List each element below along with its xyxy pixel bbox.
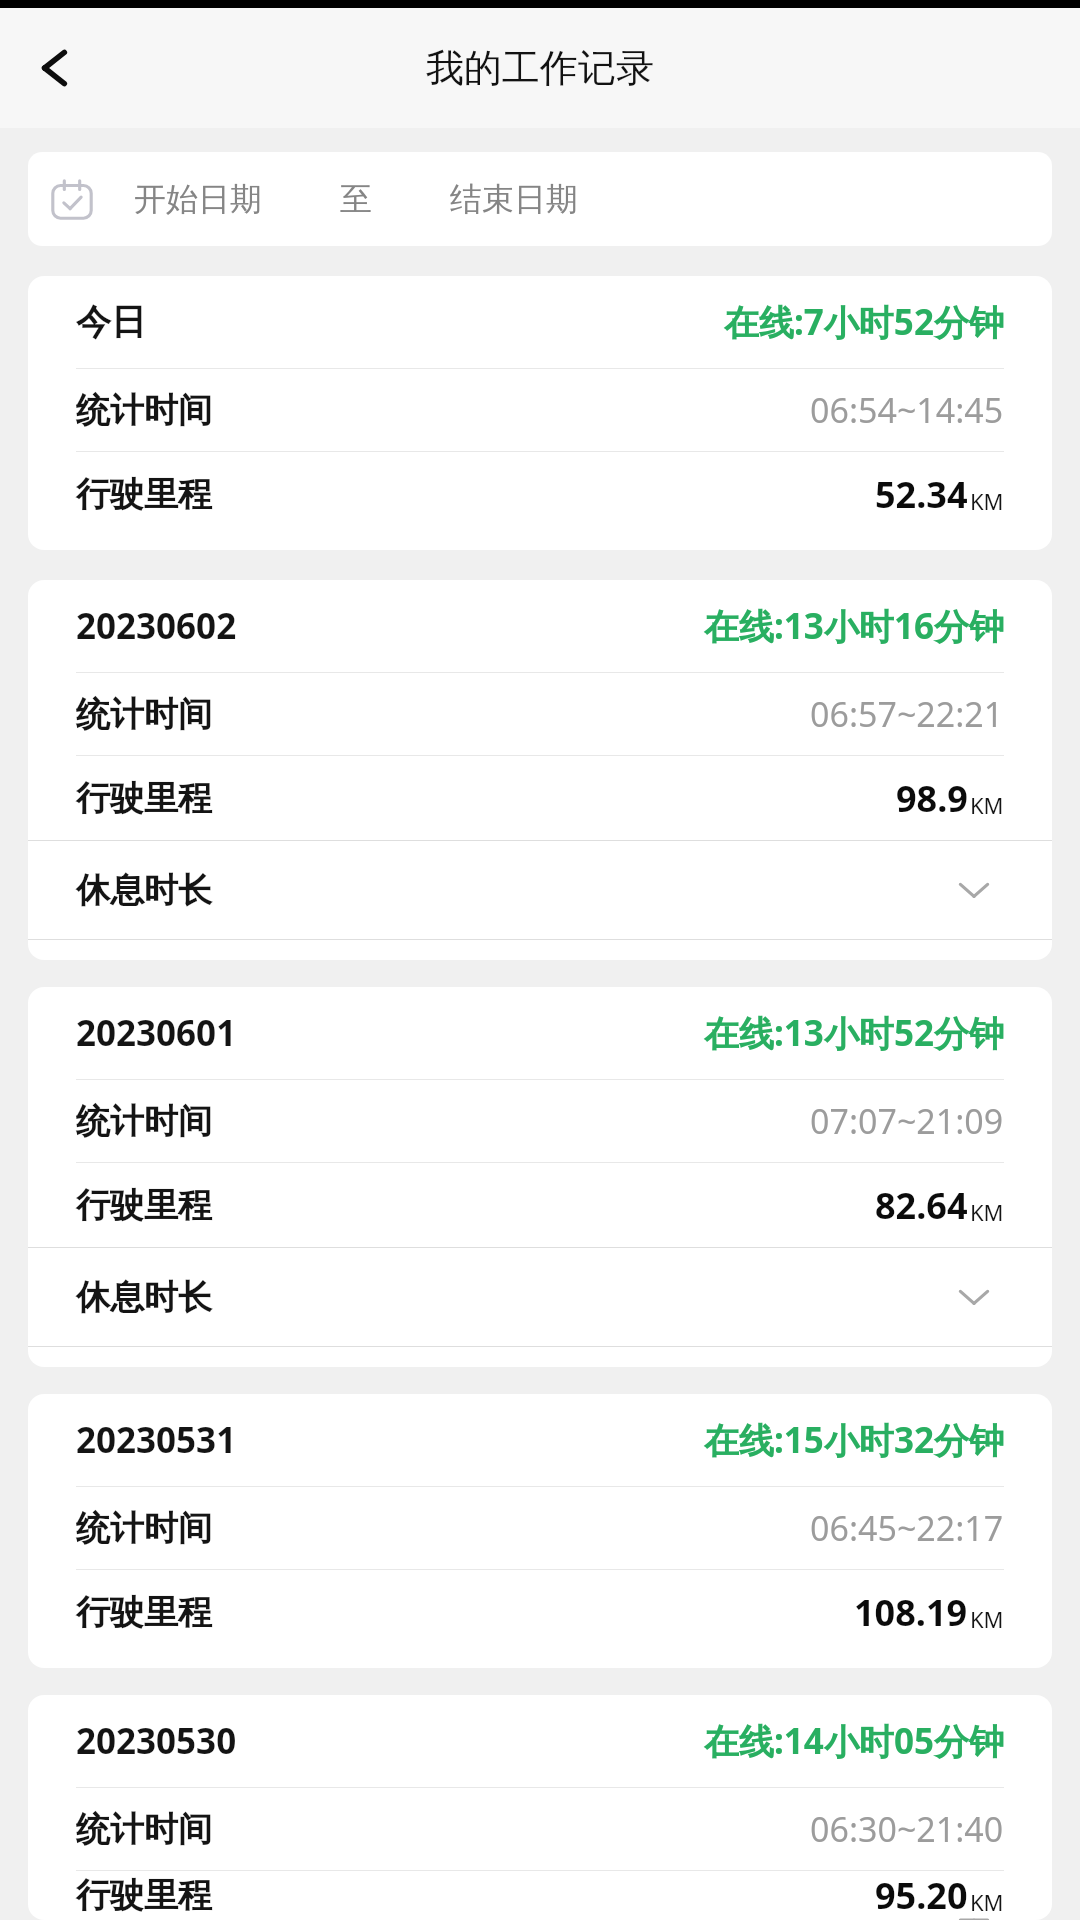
staticText: 06:57~22:21 [810,691,1004,737]
staticText: 我的工作记录 [426,44,654,92]
staticText: KM [970,1604,1004,1634]
staticText: 统计时间 [76,693,212,736]
staticText: 20230531 [76,1416,237,1464]
button[interactable]: 今日 [28,276,1052,550]
button[interactable]: 20230601 [28,987,1052,1367]
staticText: 统计时间 [76,1507,212,1550]
staticText: 52.34 [875,470,968,519]
other: Expand rest duration [950,866,998,914]
button[interactable]: Back [12,25,98,111]
button[interactable]: 20230602 [28,580,1052,960]
staticText: 统计时间 [76,1100,212,1143]
staticText: 行驶里程 [76,1874,212,1917]
staticText: KM [970,486,1004,516]
staticText: 06:54~14:45 [810,387,1004,433]
staticText: 开始日期 [134,179,262,219]
staticText: 在线:15小时32分钟 [704,1416,1004,1464]
staticText: 06:45~22:17 [810,1505,1004,1551]
staticText: 20230530 [76,1717,237,1765]
staticText: 98.9 [896,774,968,823]
staticText: 20230601 [76,1009,237,1057]
staticText: 在线:14小时05分钟 [704,1717,1004,1765]
button[interactable]: 20230530 [28,1695,1052,1920]
button[interactable]: 休息时长 [28,841,1052,939]
button[interactable]: 20230531 [28,1394,1052,1668]
staticText: 休息时长 [76,1276,212,1319]
staticText: 行驶里程 [76,473,212,516]
staticText: 结束日期 [450,179,578,219]
staticText: 行驶里程 [76,777,212,820]
staticText: 108.19 [854,1588,968,1637]
staticText: 20230602 [76,602,237,650]
staticText: KM [970,790,1004,820]
staticText: 在线:7小时52分钟 [724,298,1004,346]
staticText: 统计时间 [76,389,212,432]
staticText: 07:07~21:09 [810,1098,1004,1144]
staticText: KM [970,1197,1004,1227]
staticText: 行驶里程 [76,1184,212,1227]
staticText: 至 [340,179,372,219]
staticText: 95.20 [875,1871,968,1920]
button[interactable]: 休息时长 [28,1248,1052,1346]
staticText: 在线:13小时16分钟 [704,602,1004,650]
staticText: 行驶里程 [76,1591,212,1634]
staticText: 82.64 [875,1181,968,1230]
staticText: 休息时长 [76,869,212,912]
staticText: 06:30~21:40 [810,1806,1004,1852]
staticText: 今日 [76,300,146,344]
staticText: 统计时间 [76,1808,212,1851]
button[interactable]: 开始日期 [28,152,1052,246]
other: Expand rest duration [950,1273,998,1321]
staticText: 在线:13小时52分钟 [704,1009,1004,1057]
staticText: KM [970,1887,1004,1917]
